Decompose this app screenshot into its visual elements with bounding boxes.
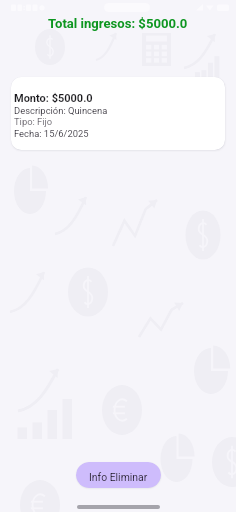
staticText: Descripción: Quincena	[14, 105, 108, 116]
staticText: Total ingresos: $5000.0	[48, 16, 188, 31]
staticText: Info Eliminar	[89, 471, 148, 483]
staticText: Monto: $5000.0	[14, 92, 93, 105]
staticText: Fecha: 15/6/2025	[14, 128, 89, 139]
button[interactable]: Monto: $5000.0	[11, 77, 225, 150]
button[interactable]: Info Eliminar	[76, 462, 161, 488]
staticText: Tipo: Fijo	[14, 116, 53, 127]
